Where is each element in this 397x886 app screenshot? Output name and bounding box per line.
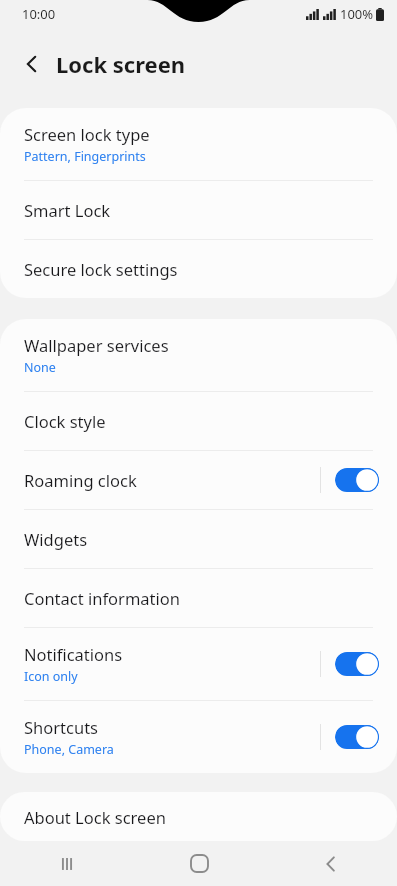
staticText: Shortcuts xyxy=(24,716,98,738)
staticText: 10:00 xyxy=(22,5,56,23)
button[interactable]: Shortcuts xyxy=(0,701,397,773)
staticText: Roaming clock xyxy=(24,469,137,491)
button[interactable]: Secure lock settings xyxy=(0,240,397,298)
staticText: Screen lock type xyxy=(24,123,150,145)
button[interactable]: Recent apps xyxy=(0,841,133,886)
staticText: Icon only xyxy=(24,668,78,685)
button[interactable]: About Lock screen xyxy=(0,792,397,841)
button[interactable]: Wallpaper services xyxy=(0,319,397,391)
staticText: Widgets xyxy=(24,528,88,550)
staticText: Lock screen xyxy=(56,49,186,79)
button[interactable]: Back xyxy=(10,42,54,86)
staticText: Contact information xyxy=(24,587,180,609)
button[interactable]: Back xyxy=(265,841,397,886)
staticText: Phone, Camera xyxy=(24,741,114,758)
button[interactable]: Clock style xyxy=(0,392,397,450)
button[interactable]: Notifications xyxy=(0,628,397,700)
button[interactable]: Screen lock type xyxy=(0,108,397,180)
button[interactable]: Home xyxy=(133,841,265,886)
staticText: None xyxy=(24,359,56,376)
staticText: Smart Lock xyxy=(24,199,111,221)
button[interactable]: Toggle xyxy=(335,651,379,677)
button[interactable]: Widgets xyxy=(0,510,397,568)
button[interactable]: Toggle xyxy=(335,724,379,750)
staticText: 100% xyxy=(340,5,374,23)
button[interactable]: Smart Lock xyxy=(0,181,397,239)
button[interactable]: Roaming clock xyxy=(0,451,397,509)
staticText: Clock style xyxy=(24,410,106,432)
staticText: Pattern, Fingerprints xyxy=(24,148,146,165)
button[interactable]: Toggle xyxy=(335,467,379,493)
staticText: About Lock screen xyxy=(24,806,166,828)
staticText: Notifications xyxy=(24,643,123,665)
staticText: Secure lock settings xyxy=(24,258,178,280)
button[interactable]: Contact information xyxy=(0,569,397,627)
staticText: Wallpaper services xyxy=(24,334,169,356)
